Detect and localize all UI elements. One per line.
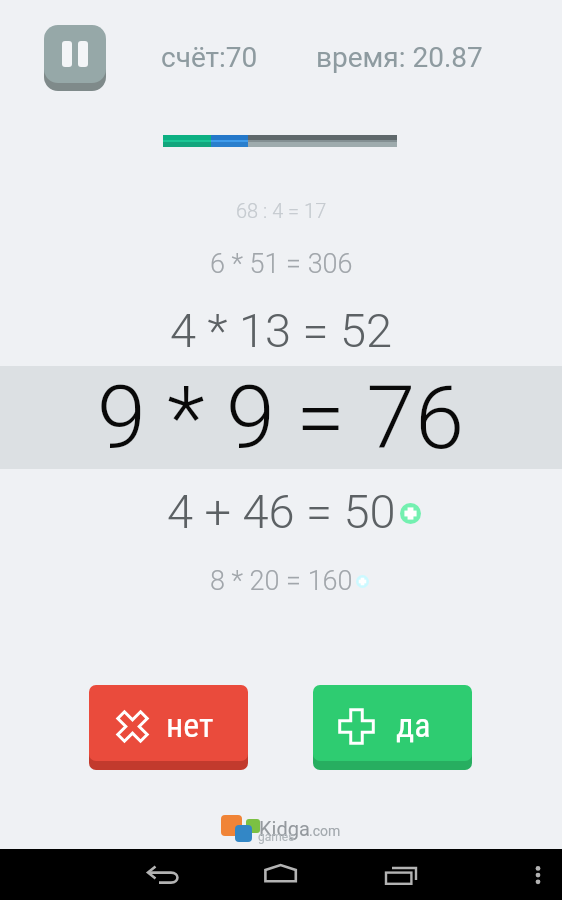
staticText: 6 * 51 = 306 xyxy=(210,248,353,280)
staticText: 4 + 46 = 50 xyxy=(167,484,396,539)
button[interactable]: да xyxy=(313,685,472,761)
staticText: нет xyxy=(166,705,214,745)
button[interactable]: Back xyxy=(146,866,182,892)
staticText: счёт:70 xyxy=(161,41,258,74)
button[interactable]: Pause xyxy=(44,25,106,83)
staticText: да xyxy=(396,705,431,745)
button[interactable]: нет xyxy=(89,685,248,761)
button[interactable]: Home xyxy=(263,863,299,889)
staticText: .com xyxy=(309,823,341,839)
staticText: 9 * 9 = 76 xyxy=(97,366,465,469)
button[interactable]: More options xyxy=(532,863,544,889)
staticText: games xyxy=(258,830,295,844)
staticText: 4 * 13 = 52 xyxy=(170,303,393,358)
staticText: Kidga xyxy=(259,817,310,840)
staticText: 68 : 4 = 17 xyxy=(236,199,327,222)
button[interactable]: Recent apps xyxy=(384,862,420,888)
staticText: время: 20.87 xyxy=(316,41,483,74)
staticText: 8 * 20 = 160 xyxy=(210,565,353,597)
